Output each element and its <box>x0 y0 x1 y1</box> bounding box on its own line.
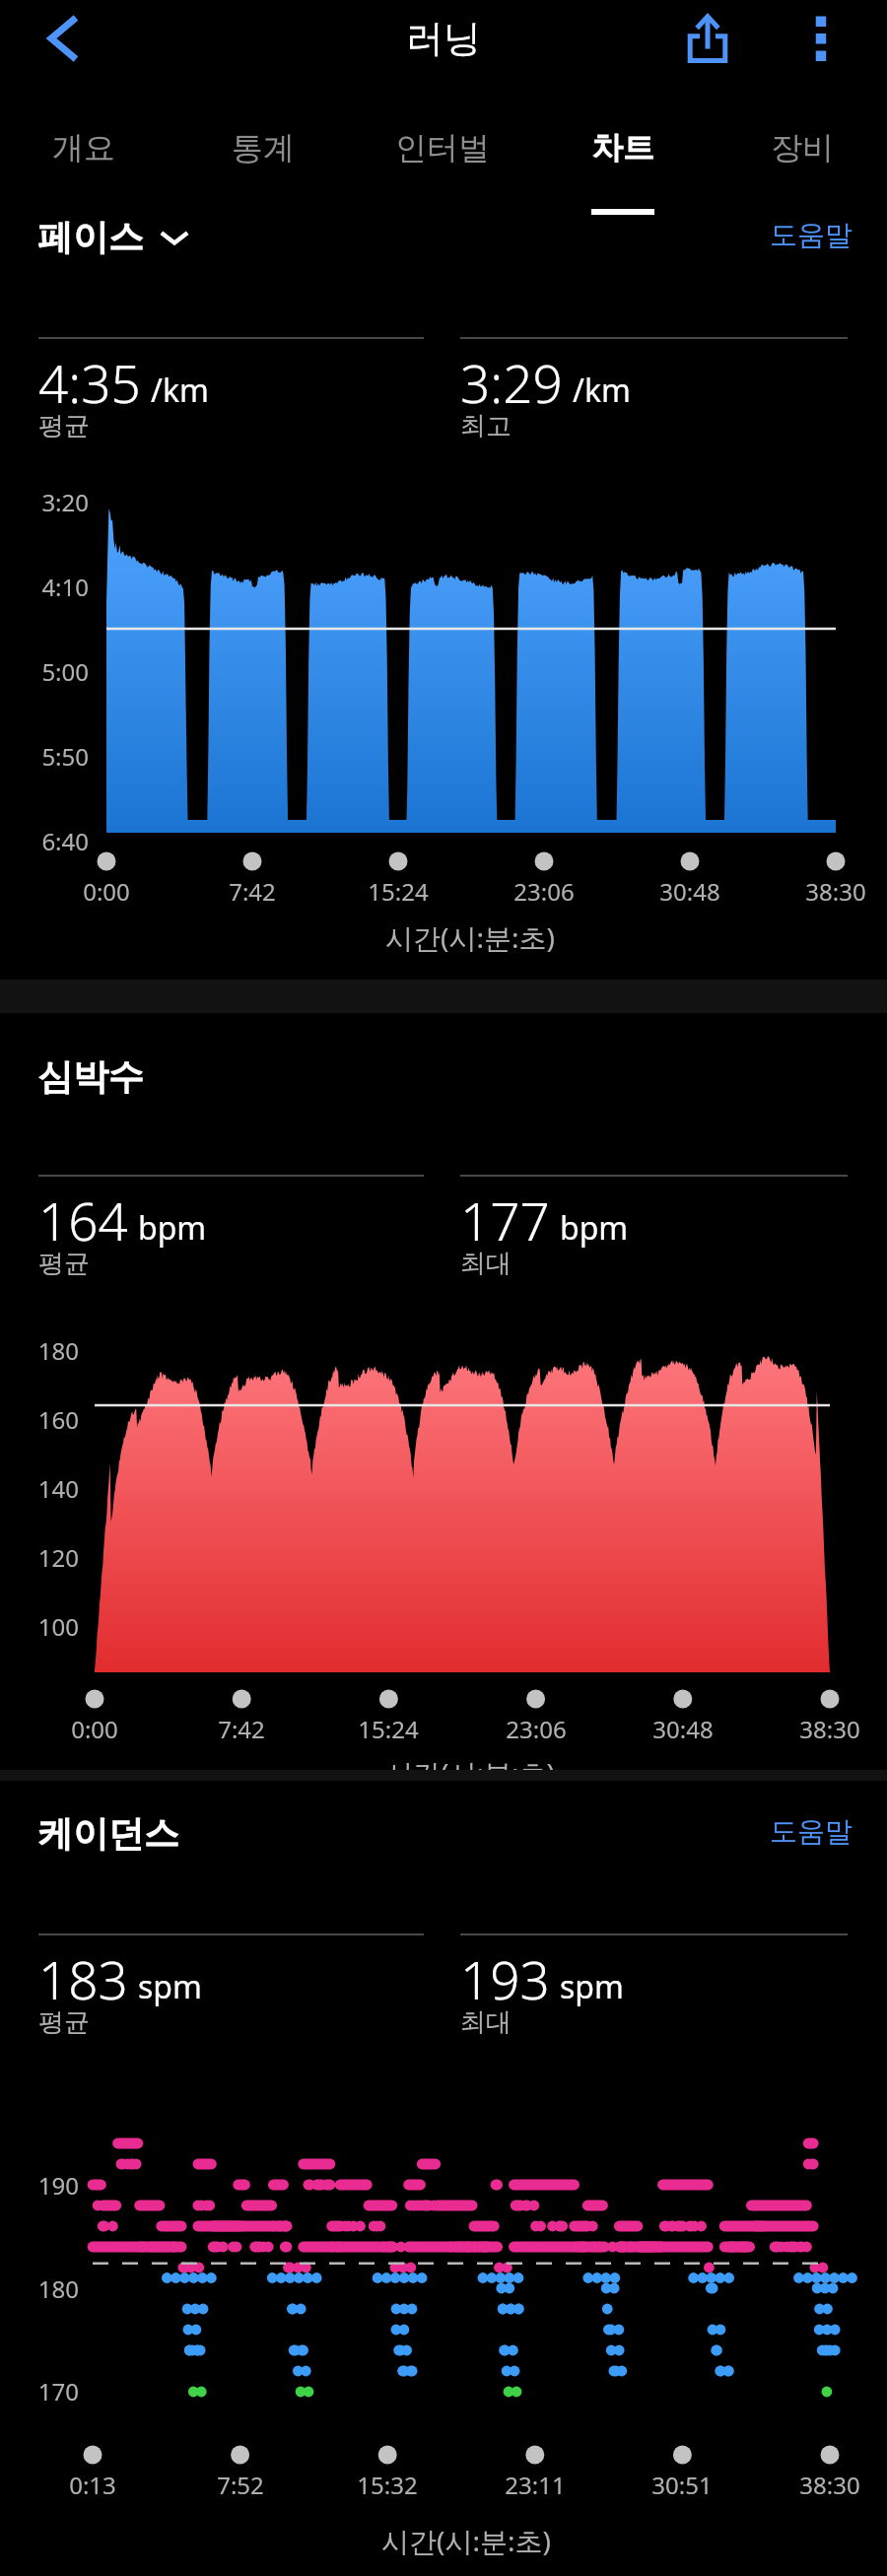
staticText: bpm <box>560 1206 629 1250</box>
button[interactable]: Back <box>26 0 102 77</box>
staticText: 23:06 <box>457 1713 615 1745</box>
button[interactable]: More options <box>783 0 859 77</box>
staticText: 193 <box>460 1943 550 2014</box>
staticText: 30:51 <box>603 2469 761 2501</box>
staticText: 0:00 <box>28 875 185 908</box>
staticText: 4:10 <box>20 571 89 603</box>
button[interactable]: 개요 <box>0 77 171 187</box>
staticText: 차트 <box>536 128 710 168</box>
staticText: 시간(시:분:초) <box>273 1754 667 1770</box>
staticText: 4:35 <box>38 347 141 418</box>
button[interactable]: 차트 <box>536 77 710 187</box>
staticText: 최고 <box>460 410 854 442</box>
staticText: 170 <box>14 2375 79 2407</box>
staticText: 38:30 <box>757 875 887 908</box>
staticText: 0:13 <box>14 2469 171 2501</box>
staticText: 3:20 <box>20 486 89 518</box>
button[interactable]: 장비 <box>716 77 887 187</box>
button[interactable]: 통계 <box>176 77 350 187</box>
staticText: 최대 <box>460 1248 854 1280</box>
staticText: 30:48 <box>604 1713 762 1745</box>
staticText: 38:30 <box>751 1713 887 1745</box>
button[interactable]: 도움말 <box>770 218 853 252</box>
staticText: 0:00 <box>16 1713 173 1745</box>
staticText: spm <box>138 1965 202 2008</box>
staticText: 통계 <box>176 128 350 168</box>
staticText: 180 <box>14 2272 79 2305</box>
staticText: 심박수 <box>37 1054 144 1099</box>
staticText: 140 <box>14 1472 79 1505</box>
staticText: spm <box>560 1965 624 2008</box>
staticText: 38:30 <box>751 2469 887 2501</box>
button[interactable]: 도움말 <box>770 1814 853 1849</box>
button[interactable]: Share <box>668 0 747 77</box>
staticText: 7:42 <box>163 1713 320 1745</box>
staticText: 평균 <box>38 410 433 442</box>
button[interactable]: 인터벌 <box>356 77 529 187</box>
staticText: 180 <box>14 1334 79 1367</box>
staticText: 164 <box>38 1185 128 1255</box>
staticText: 3:29 <box>460 347 563 418</box>
staticText: 시간(시:분:초) <box>273 918 667 956</box>
staticText: 5:00 <box>20 655 89 688</box>
staticText: 러닝 <box>406 15 481 62</box>
staticText: 183 <box>38 1943 128 2014</box>
staticText: 개요 <box>0 128 171 168</box>
staticText: 6:40 <box>20 825 89 857</box>
staticText: 페이스 <box>37 215 144 259</box>
staticText: 평균 <box>38 1248 433 1280</box>
staticText: /km <box>151 369 209 412</box>
staticText: 인터벌 <box>356 128 529 168</box>
staticText: 100 <box>14 1610 79 1643</box>
staticText: bpm <box>138 1206 207 1250</box>
staticText: 30:48 <box>611 875 769 908</box>
staticText: 177 <box>460 1185 550 1255</box>
staticText: 도움말 <box>770 218 853 252</box>
staticText: 190 <box>14 2169 79 2202</box>
staticText: 케이던스 <box>37 1811 179 1856</box>
staticText: 7:52 <box>162 2469 319 2501</box>
staticText: 7:42 <box>173 875 331 908</box>
staticText: 15:24 <box>319 875 477 908</box>
staticText: 120 <box>14 1541 79 1574</box>
staticText: 장비 <box>716 128 887 168</box>
staticText: 23:06 <box>465 875 623 908</box>
staticText: /km <box>573 369 631 412</box>
staticText: 23:11 <box>456 2469 614 2501</box>
staticText: 시간(시:분:초) <box>269 2522 663 2559</box>
staticText: 도움말 <box>770 1814 853 1849</box>
button[interactable]: 심박수 <box>37 1054 144 1099</box>
staticText: 15:24 <box>309 1713 467 1745</box>
staticText: 5:50 <box>20 740 89 773</box>
staticText: 최대 <box>460 2006 854 2039</box>
button[interactable]: 페이스 <box>37 215 189 259</box>
staticText: 15:32 <box>308 2469 466 2501</box>
staticText: 평균 <box>38 2006 433 2039</box>
staticText: 160 <box>14 1403 79 1436</box>
button[interactable]: 케이던스 <box>37 1811 179 1856</box>
